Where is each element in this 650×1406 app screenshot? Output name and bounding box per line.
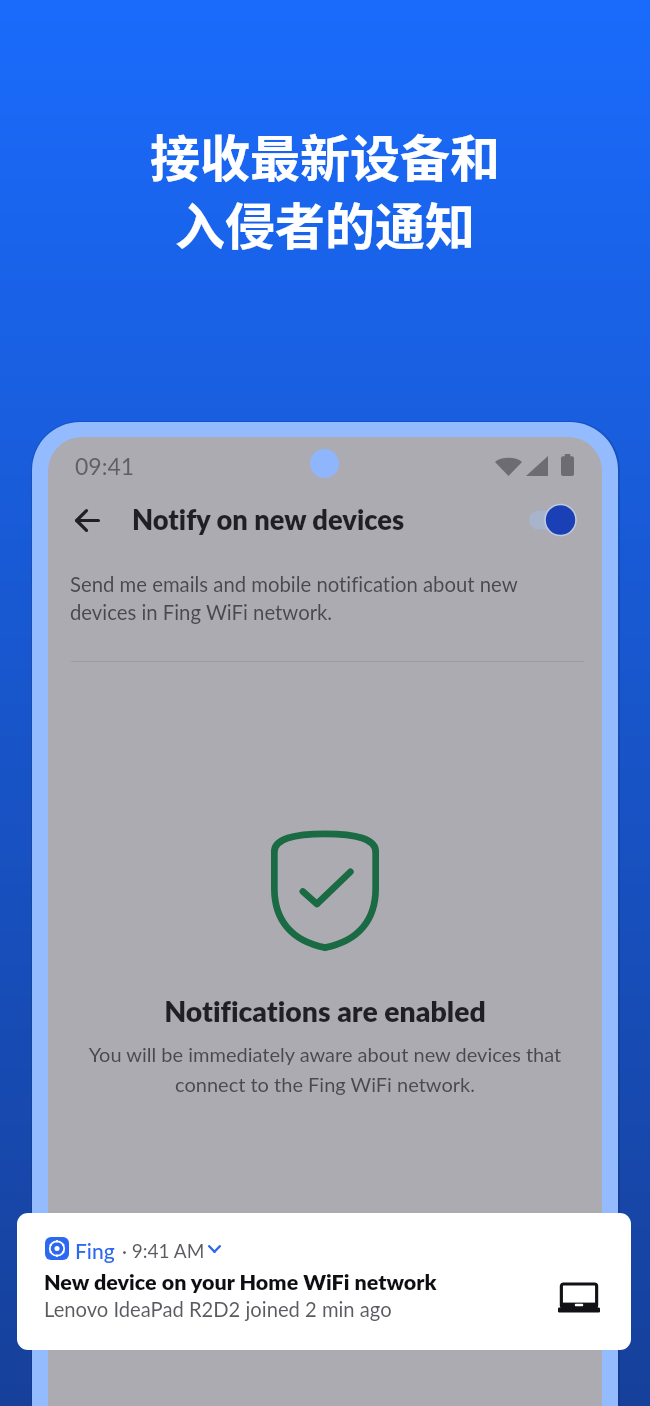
staticText: New device on your Home WiFi network [44,1269,437,1295]
staticText: Notify on new devices [132,503,405,536]
staticText: Lenovo IdeaPad R2D2 joined 2 min ago [44,1297,392,1321]
staticText: Notifications are enabled [48,994,602,1028]
staticText: Fing [75,1238,115,1263]
button[interactable]: Toggle notify on new devices [518,497,582,543]
staticText: Send me emails and mobile notification a… [70,572,545,625]
button[interactable]: Back [53,486,121,554]
button[interactable]: Fing [17,1213,631,1350]
staticText: · 9:41 AM [122,1239,205,1262]
staticText: You will be immediately aware about new … [70,1042,580,1096]
staticText: 接收最新设备和 入侵者的通知 [150,119,500,260]
staticText: 09:41 [75,452,135,480]
